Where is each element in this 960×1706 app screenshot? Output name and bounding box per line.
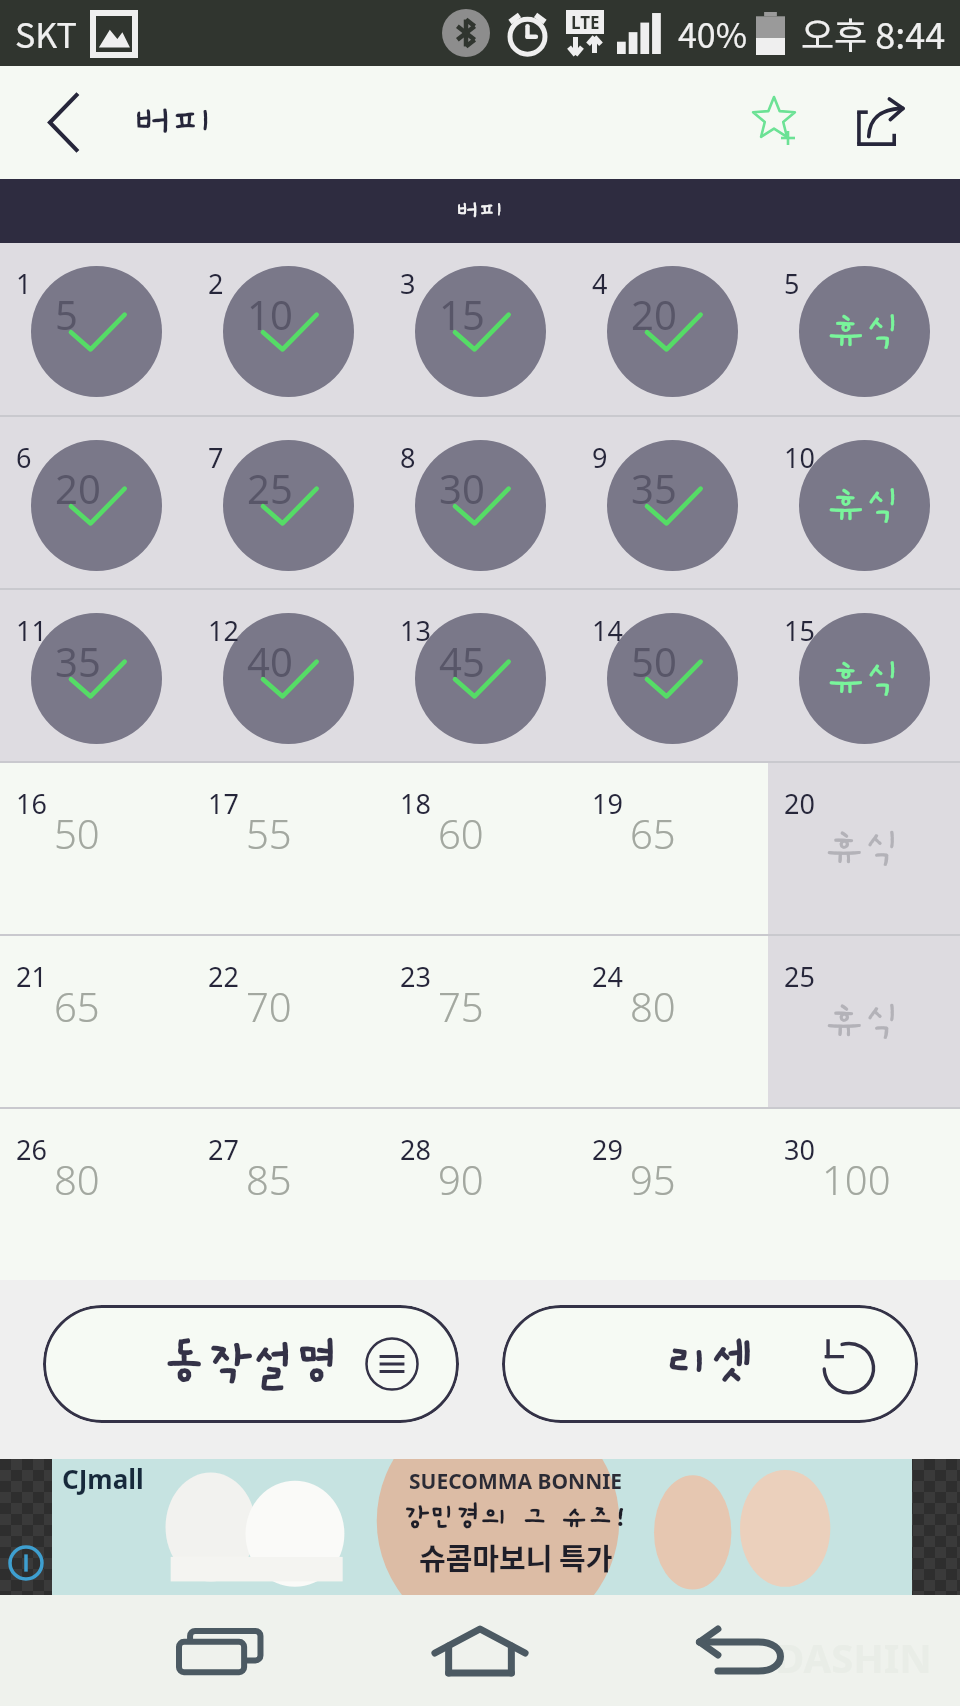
button[interactable]: 50 <box>0 763 192 934</box>
staticText: 23 <box>400 958 431 995</box>
staticText: 65 <box>630 806 676 860</box>
button[interactable]: 90 <box>384 1109 576 1280</box>
button[interactable]: 80 <box>0 1109 192 1280</box>
button[interactable]: 25 <box>192 417 384 588</box>
button[interactable]: 15 <box>384 243 576 415</box>
button[interactable]: 35 <box>576 417 768 588</box>
button[interactable]: 30 <box>384 417 576 588</box>
staticText: 50 <box>54 806 100 860</box>
button[interactable]: 휴식 <box>768 243 960 415</box>
staticText: 휴식 <box>827 656 903 702</box>
staticText: 10 <box>247 287 293 341</box>
button[interactable]: 70 <box>192 936 384 1107</box>
button[interactable]: 10 <box>192 243 384 415</box>
staticText: 20 <box>631 287 677 341</box>
button[interactable]: 45 <box>384 590 576 761</box>
staticText: 28 <box>400 1131 431 1168</box>
staticText: 25 <box>784 958 815 995</box>
staticText: 휴식 <box>825 825 903 872</box>
staticText: 80 <box>54 1152 100 1206</box>
button[interactable]: Share <box>828 66 932 179</box>
staticText: 24 <box>592 958 623 995</box>
staticText: 35 <box>55 634 101 688</box>
staticText: 11 <box>16 612 47 649</box>
button[interactable]: 리셋 <box>502 1305 918 1423</box>
staticText: 5 <box>784 265 800 302</box>
button[interactable]: 휴식 <box>768 590 960 761</box>
button[interactable]: Back <box>0 66 127 179</box>
staticText: 16 <box>16 785 47 822</box>
staticText: 35 <box>631 461 677 515</box>
button[interactable]: 65 <box>0 936 192 1107</box>
button[interactable]: 55 <box>192 763 384 934</box>
button[interactable]: Add to favourites <box>723 66 828 179</box>
staticText: 20 <box>55 461 101 515</box>
button[interactable]: Ad info <box>8 1545 44 1581</box>
staticText: 12 <box>208 612 239 649</box>
staticText: 40% <box>678 9 748 58</box>
staticText: 휴식 <box>825 998 903 1045</box>
button[interactable]: 35 <box>0 590 192 761</box>
button[interactable]: 휴식 <box>768 417 960 588</box>
button[interactable]: 100 <box>768 1109 960 1280</box>
staticText: 75 <box>438 979 484 1033</box>
staticText: 45 <box>439 634 485 688</box>
staticText: 리셋 <box>666 1337 755 1391</box>
staticText: 4 <box>592 265 608 302</box>
button[interactable]: Recent apps <box>90 1595 350 1706</box>
staticText: 80 <box>630 979 676 1033</box>
staticText: 30 <box>784 1131 815 1168</box>
button[interactable]: 40 <box>192 590 384 761</box>
staticText: 15 <box>784 612 815 649</box>
staticText: 5 <box>55 287 78 341</box>
button[interactable]: 60 <box>384 763 576 934</box>
staticText: 26 <box>16 1131 47 1168</box>
staticText: 1 <box>16 265 32 302</box>
staticText: 오후 8:44 <box>801 7 946 59</box>
staticText: 버피 <box>455 196 505 226</box>
button[interactable]: 65 <box>576 763 768 934</box>
staticText: 18 <box>400 785 431 822</box>
staticText: 90 <box>438 1152 484 1206</box>
staticText: 9 <box>592 439 608 476</box>
staticText: 10 <box>784 439 815 476</box>
staticText: 60 <box>438 806 484 860</box>
button[interactable]: 20 <box>0 417 192 588</box>
button[interactable]: 휴식 <box>768 936 960 1107</box>
staticText: 27 <box>208 1131 239 1168</box>
staticText: 강민경의 그 슈즈! <box>403 1502 628 1534</box>
button[interactable]: 5 <box>0 243 192 415</box>
button[interactable]: 75 <box>384 936 576 1107</box>
staticText: 95 <box>630 1152 676 1206</box>
staticText: 2 <box>208 265 224 302</box>
staticText: 100 <box>822 1152 891 1206</box>
button[interactable]: 동작설명 <box>43 1305 459 1423</box>
staticText: 슈콤마보니 특가 <box>419 1536 613 1578</box>
staticText: 19 <box>592 785 623 822</box>
staticText: LTE <box>571 11 600 34</box>
staticText: SUECOMMA BONNIE <box>409 1467 623 1496</box>
staticText: 17 <box>208 785 239 822</box>
staticText: 동작설명 <box>162 1337 340 1391</box>
button[interactable]: 80 <box>576 936 768 1107</box>
button[interactable]: 95 <box>576 1109 768 1280</box>
staticText: 15 <box>439 287 485 341</box>
staticText: 85 <box>246 1152 292 1206</box>
staticText: 20 <box>784 785 815 822</box>
staticText: 21 <box>16 958 47 995</box>
staticText: 22 <box>208 958 239 995</box>
button[interactable]: 85 <box>192 1109 384 1280</box>
staticText: 50 <box>631 634 677 688</box>
button[interactable]: 휴식 <box>768 763 960 934</box>
staticText: 55 <box>246 806 292 860</box>
button[interactable]: 50 <box>576 590 768 761</box>
staticText: 8 <box>400 439 416 476</box>
button[interactable]: Home <box>350 1595 610 1706</box>
staticText: 3 <box>400 265 416 302</box>
staticText: 6 <box>16 439 32 476</box>
staticText: 휴식 <box>827 309 903 355</box>
staticText: 65 <box>54 979 100 1033</box>
button[interactable]: 20 <box>576 243 768 415</box>
button[interactable]: Back <box>610 1595 870 1706</box>
staticText: 버피 <box>132 98 214 148</box>
